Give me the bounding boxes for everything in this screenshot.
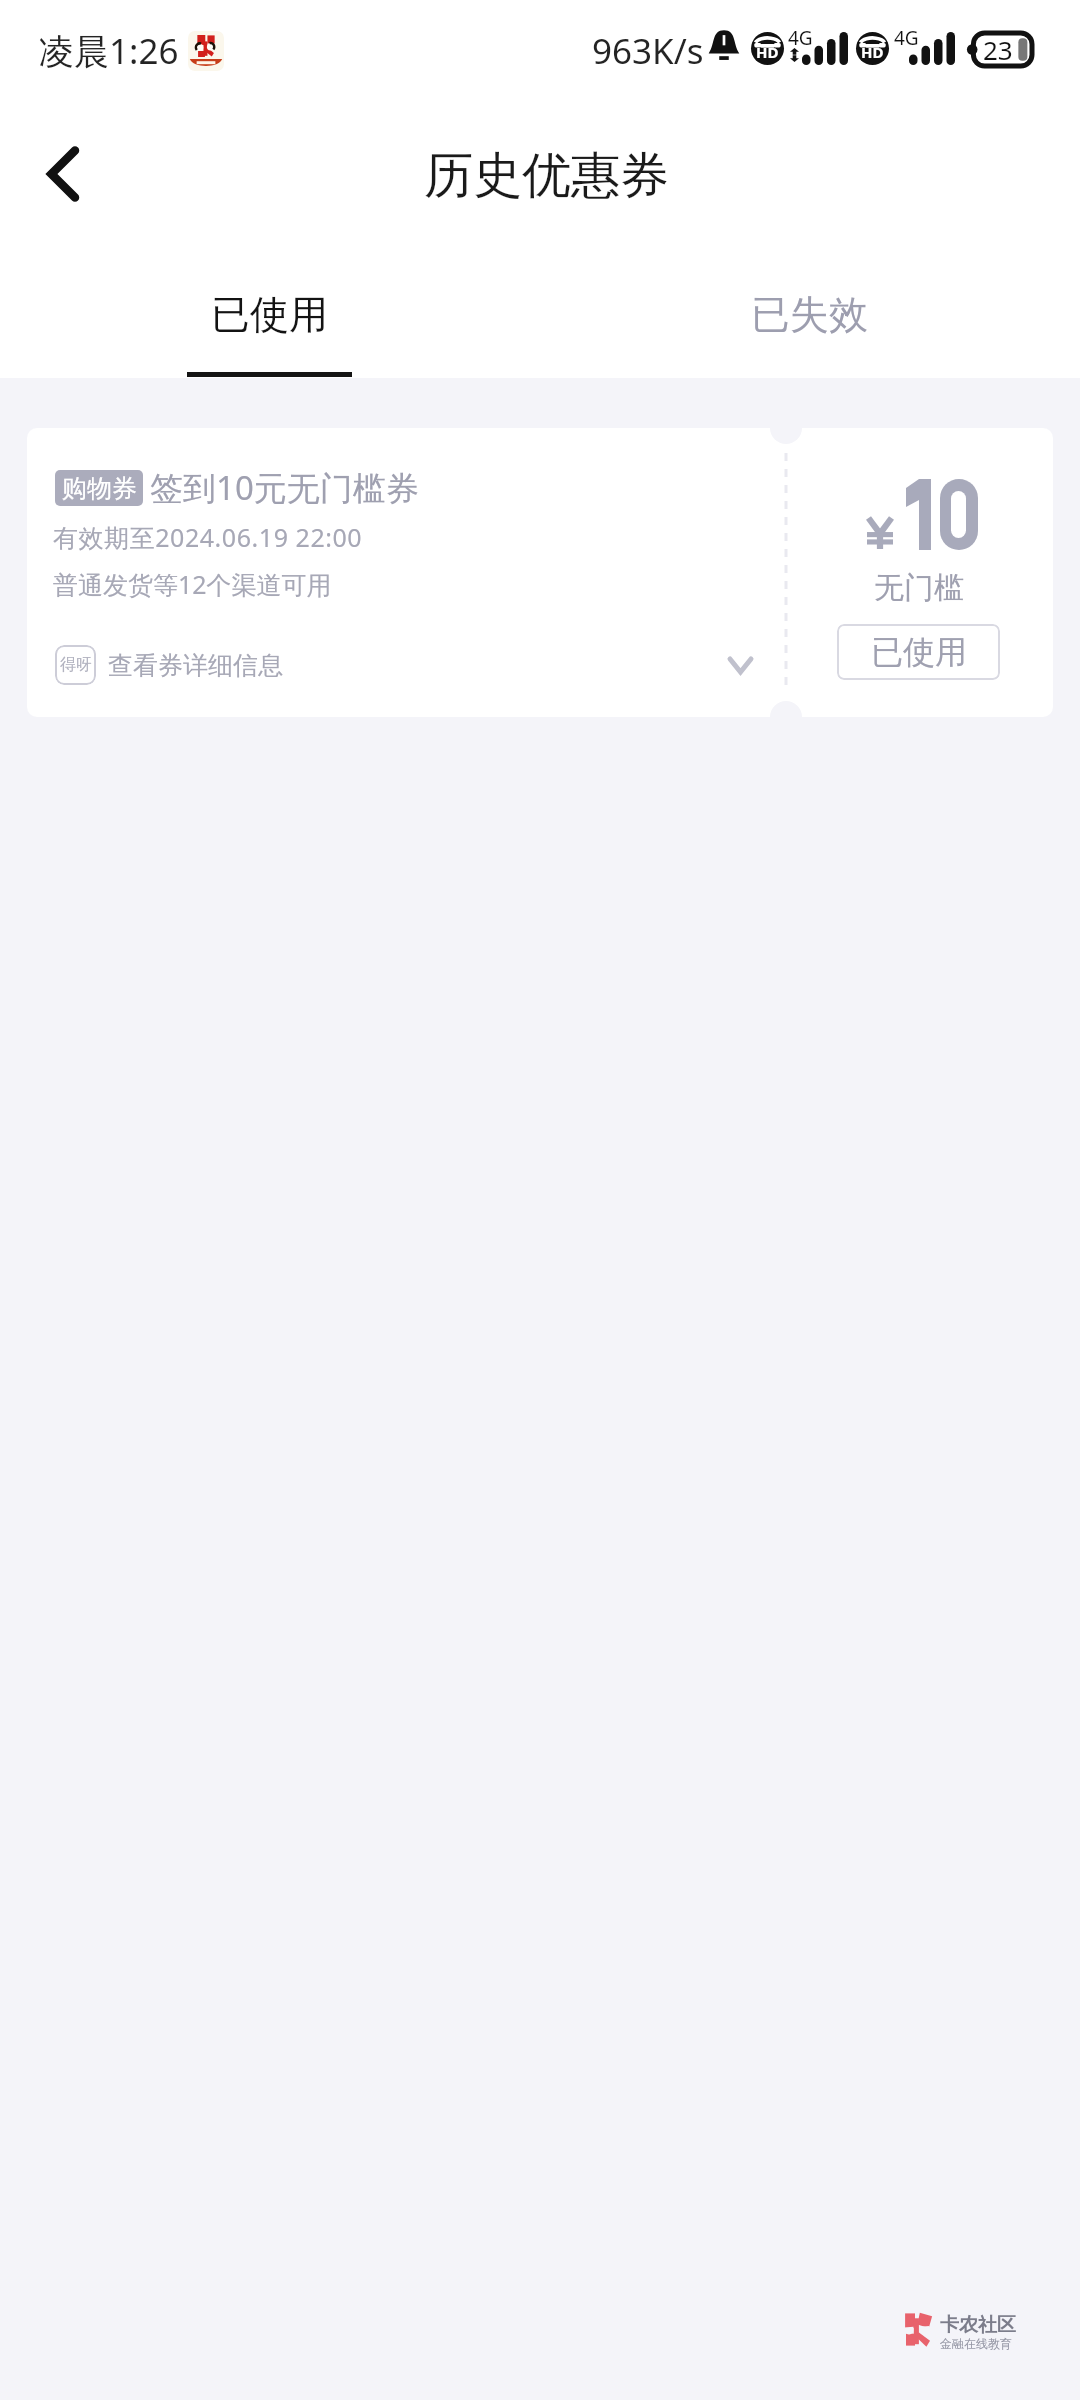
staticText: HD <box>756 42 779 62</box>
staticText: 4G <box>894 25 919 51</box>
staticText: 历史优惠券 <box>424 145 669 207</box>
staticText: 4G <box>788 25 813 51</box>
staticText: 已使用 <box>211 290 328 339</box>
button[interactable]: 已失效 <box>674 250 944 378</box>
staticText: 已使用 <box>871 632 967 672</box>
staticText: 卡农社区 <box>940 2313 1016 2337</box>
button[interactable]: 购物券 <box>27 428 1053 717</box>
staticText: 23 <box>983 32 1013 65</box>
staticText: 963K/s <box>592 27 704 75</box>
staticText: 已失效 <box>751 290 868 339</box>
staticText: 普通发货等12个渠道可用 <box>53 567 332 601</box>
button[interactable]: 已使用 <box>134 250 404 378</box>
button[interactable]: 得呀 <box>27 635 786 695</box>
staticText: HD <box>861 42 884 62</box>
button[interactable]: 已使用 <box>837 624 1000 680</box>
staticText: 金融在线教育 <box>940 2336 1012 2351</box>
staticText: 有效期至2024.06.19 22:00 <box>53 520 363 554</box>
staticText: 凌晨1:26 <box>39 27 179 75</box>
staticText: 无门槛 <box>874 569 964 607</box>
staticText: 得呀 <box>60 655 92 675</box>
staticText: 购物券 <box>62 473 137 504</box>
button[interactable]: Back <box>19 134 99 214</box>
staticText: 签到10元无门槛券 <box>150 465 419 510</box>
staticText: 查看券详细信息 <box>108 650 283 681</box>
